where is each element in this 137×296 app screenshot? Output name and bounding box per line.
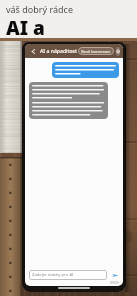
button[interactable] xyxy=(29,82,108,119)
button[interactable]: Nová konverzace xyxy=(78,47,114,55)
staticText: AI a nápaditost xyxy=(40,48,78,55)
staticText: AI a nápaditost xyxy=(6,15,137,38)
staticText: 0/500 xyxy=(110,281,119,285)
button[interactable]: Zadejte otázky pro AI xyxy=(29,270,107,280)
staticText: váš dobrý rádce xyxy=(6,3,73,15)
button[interactable] xyxy=(52,62,119,78)
button[interactable]: Nastavení xyxy=(116,47,120,56)
button[interactable]: Odeslat xyxy=(110,270,120,280)
button[interactable]: Zpět xyxy=(28,46,38,56)
staticText: Zadejte otázky pro AI xyxy=(32,272,74,278)
staticText: Nová konverzace xyxy=(81,49,111,54)
